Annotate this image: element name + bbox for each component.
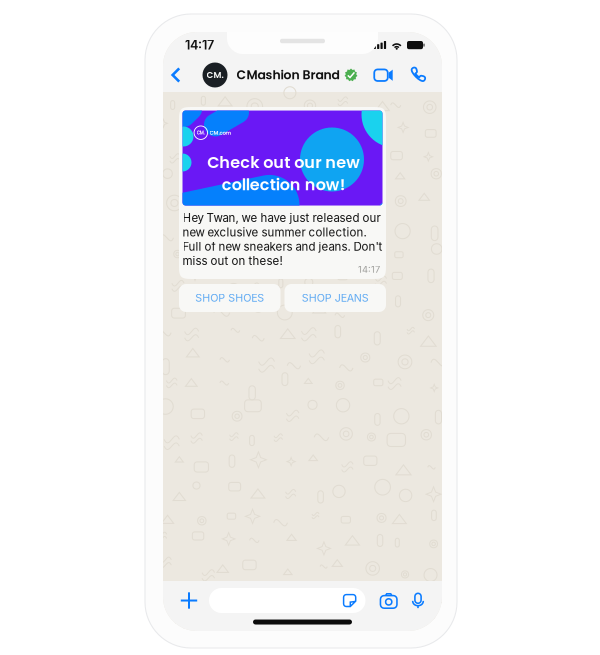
button[interactable]: CM. [202, 58, 357, 91]
button[interactable]: SHOP JEANS [284, 284, 386, 312]
staticText: Check out our new collection now! [207, 151, 360, 196]
staticText: Hey Twan, we have just released our new … [182, 211, 382, 268]
staticText: CM.com [209, 129, 231, 137]
button[interactable]: Video call [369, 62, 398, 88]
staticText: SHOP JEANS [302, 291, 369, 304]
button[interactable]: Camera [365, 592, 397, 608]
button[interactable]: Stickers [342, 593, 356, 607]
staticText: 14:17 [185, 37, 214, 53]
button[interactable]: Voice call [405, 61, 432, 88]
button[interactable]: Attach [180, 591, 198, 609]
button[interactable]: Record voice message [397, 592, 425, 608]
staticText: CMashion Brand [236, 66, 339, 84]
staticText: SHOP SHOES [195, 291, 264, 304]
button[interactable]: Back [165, 60, 187, 90]
staticText: CM. [206, 69, 223, 81]
staticText: 14:17 [358, 264, 380, 275]
button[interactable]: SHOP SHOES [179, 284, 280, 312]
staticText: CM. [197, 130, 205, 136]
